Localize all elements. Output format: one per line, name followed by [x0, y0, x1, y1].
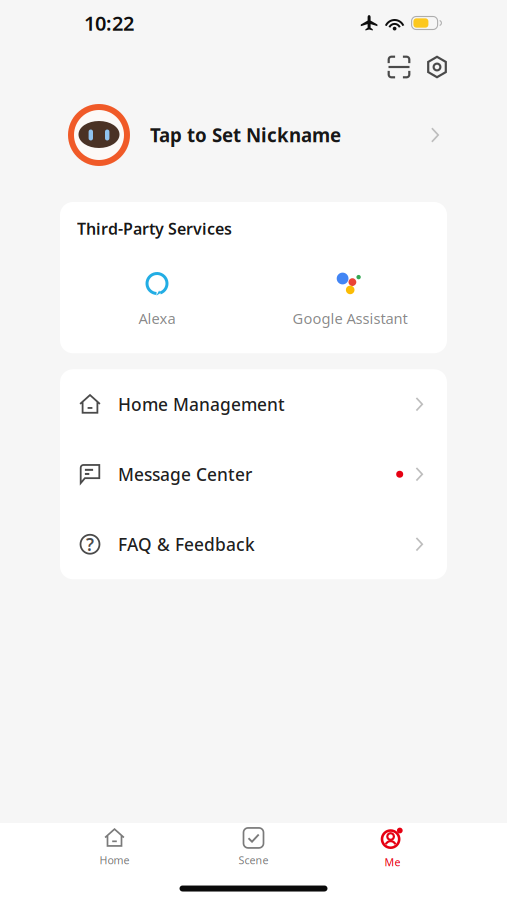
staticText: Alexa [138, 308, 175, 328]
staticText: Third-Party Services [77, 218, 232, 239]
button[interactable]: Scan [380, 48, 418, 86]
staticText: Home [99, 853, 129, 867]
button[interactable]: Message Center [60, 439, 447, 509]
staticText: FAQ & Feedback [118, 533, 255, 556]
button[interactable]: Me [323, 823, 462, 871]
staticText: ? [86, 533, 94, 556]
button[interactable]: Home Management [60, 369, 447, 439]
staticText: 10:22 [84, 10, 134, 36]
button[interactable]: Alexa [60, 269, 253, 329]
staticText: Message Center [118, 463, 252, 486]
button[interactable]: Home [45, 823, 184, 871]
staticText: Home Management [118, 393, 285, 416]
button[interactable]: Tap to Set Nickname [0, 88, 507, 182]
staticText: Tap to Set Nickname [150, 123, 341, 147]
button[interactable]: Settings [418, 48, 456, 86]
staticText: Me [384, 855, 400, 869]
button[interactable]: Google Assistant [253, 269, 446, 329]
staticText: Scene [238, 853, 268, 867]
button[interactable]: Scene [184, 823, 323, 871]
button[interactable]: ? [60, 509, 447, 579]
staticText: Google Assistant [292, 308, 407, 328]
